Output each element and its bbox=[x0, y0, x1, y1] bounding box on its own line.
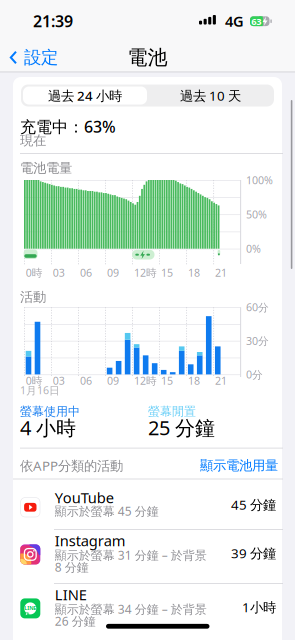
staticText: 螢幕閒置 bbox=[148, 404, 196, 419]
staticText: 03 bbox=[53, 265, 65, 280]
staticText: 50% bbox=[246, 207, 267, 221]
staticText: 03 bbox=[53, 373, 65, 388]
staticText: 顯示於螢幕 34 分鐘 – 於背景 bbox=[55, 601, 207, 617]
staticText: 依APP分類的活動 bbox=[20, 457, 123, 474]
staticText: 21 bbox=[215, 373, 227, 388]
staticText: 8 分鐘 bbox=[55, 559, 89, 575]
staticText: 30分 bbox=[246, 334, 269, 348]
button[interactable]: Instagram bbox=[0, 0, 269, 54]
staticText: 4G bbox=[225, 11, 244, 31]
staticText: 100% bbox=[246, 173, 273, 187]
staticText: 39 分鐘 bbox=[231, 544, 276, 562]
staticText: 21 bbox=[215, 265, 227, 280]
staticText: 12時 bbox=[134, 265, 157, 280]
button[interactable]: 返回設定 bbox=[0, 0, 60, 24]
staticText: 0% bbox=[246, 242, 261, 256]
button[interactable]: 過去 10 天 bbox=[0, 0, 124, 18]
staticText: 充電中：63% bbox=[20, 116, 116, 137]
staticText: 0時 bbox=[26, 373, 43, 388]
staticText: 25 分鐘 bbox=[148, 414, 215, 441]
staticText: LINE bbox=[24, 604, 36, 611]
staticText: 設定 bbox=[24, 47, 58, 68]
staticText: 21:39 bbox=[33, 10, 73, 32]
staticText: 1月16日 bbox=[20, 383, 60, 397]
staticText: 0時 bbox=[26, 265, 43, 280]
staticText: 1小時 bbox=[242, 598, 276, 616]
staticText: 45 分鐘 bbox=[231, 496, 276, 513]
staticText: 12時 bbox=[134, 373, 157, 388]
staticText: 06 bbox=[80, 373, 92, 388]
button[interactable]: YouTube bbox=[0, 0, 269, 49]
staticText: 0分 bbox=[246, 367, 263, 381]
staticText: 電池電量 bbox=[20, 160, 72, 176]
staticText: 4 小時 bbox=[20, 414, 76, 441]
staticText: 06 bbox=[80, 265, 92, 280]
staticText: LINE bbox=[55, 585, 87, 604]
staticText: 09 bbox=[107, 373, 119, 388]
staticText: 現在 bbox=[20, 132, 46, 149]
staticText: 15 bbox=[161, 265, 173, 280]
staticText: 18 bbox=[188, 373, 200, 388]
staticText: 顯示於螢幕 45 分鐘 bbox=[55, 503, 159, 519]
staticText: YouTube bbox=[55, 488, 114, 507]
staticText: Instagram bbox=[55, 531, 126, 550]
staticText: 電池 bbox=[127, 45, 167, 70]
staticText: 15 bbox=[161, 373, 173, 388]
staticText: 26 分鐘 bbox=[55, 613, 96, 629]
staticText: 過去 10 天 bbox=[180, 87, 241, 104]
button[interactable]: 過去 24 小時 bbox=[0, 0, 124, 18]
staticText: 09 bbox=[107, 265, 119, 280]
staticText: 顯示於螢幕 31 分鐘 – 於背景 bbox=[55, 547, 207, 563]
staticText: 60分 bbox=[246, 300, 269, 314]
staticText: 過去 24 小時 bbox=[48, 87, 122, 104]
button[interactable]: LINE bbox=[0, 0, 269, 54]
staticText: 18 bbox=[188, 265, 200, 280]
staticText: 活動 bbox=[20, 289, 46, 305]
staticText: 螢幕使用中 bbox=[20, 404, 80, 419]
button[interactable]: 顯示電池用量 bbox=[0, 0, 80, 20]
staticText: 顯示電池用量 bbox=[200, 457, 278, 474]
staticText: 63 bbox=[251, 15, 261, 27]
